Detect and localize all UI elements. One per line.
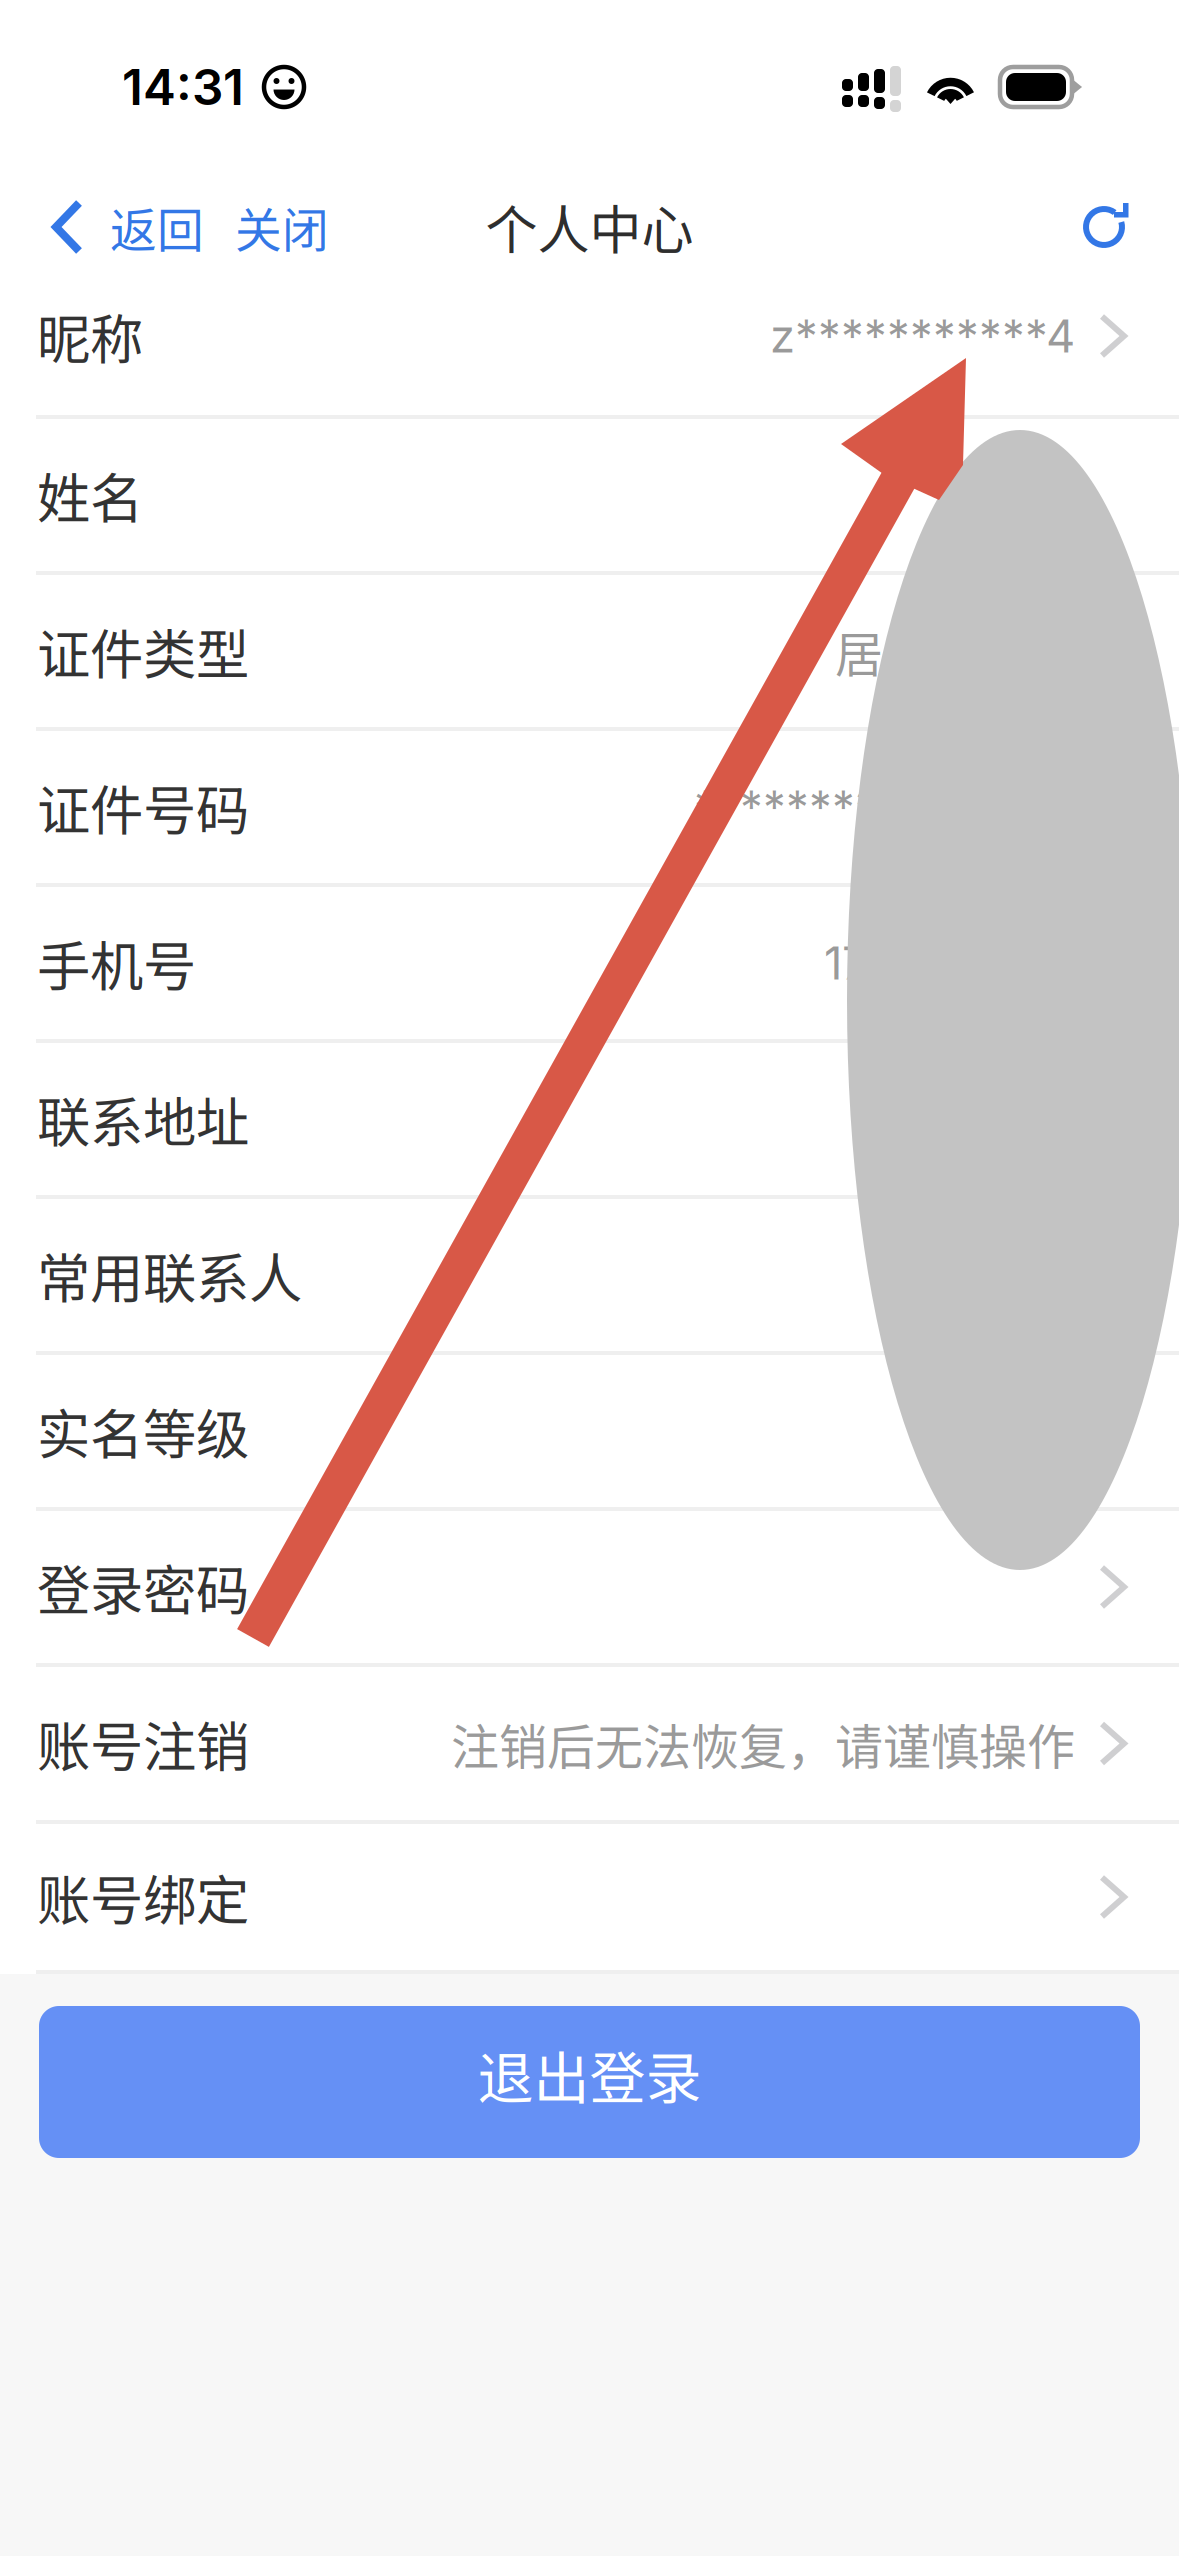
staticText: 14:31 xyxy=(122,57,244,117)
staticText: 退出登录 xyxy=(477,2033,701,2115)
staticText: 姓名 xyxy=(37,456,143,534)
button[interactable]: 实名等级 xyxy=(0,1355,1179,1511)
button[interactable]: 姓名 xyxy=(0,419,1179,575)
staticText: 账号绑定 xyxy=(37,1858,249,1936)
button[interactable]: 证件号码 xyxy=(0,731,1179,887)
staticText: 注销后无法恢复，请谨慎操作 xyxy=(451,1709,1075,1778)
button[interactable]: 证件类型 xyxy=(0,575,1179,731)
staticText: 登录密码 xyxy=(37,1548,249,1626)
button[interactable]: 登录密码 xyxy=(0,1511,1179,1667)
button[interactable]: 关闭 xyxy=(204,191,349,263)
staticText: 个人中心 xyxy=(485,189,693,264)
staticText: *************987 xyxy=(694,780,1075,834)
staticText: 证件类型 xyxy=(37,612,249,690)
button[interactable]: 账号绑定 xyxy=(0,1824,1179,1974)
staticText: 手机号 xyxy=(37,924,196,1002)
staticText: 昵称 xyxy=(37,297,143,375)
button[interactable]: 昵称 xyxy=(0,257,1179,419)
button[interactable]: 手机号 xyxy=(0,887,1179,1043)
button[interactable]: 常用联系人 xyxy=(0,1199,1179,1355)
button[interactable]: Refresh xyxy=(1063,191,1153,263)
staticText: z***********4 xyxy=(770,309,1075,363)
button[interactable]: 联系地址 xyxy=(0,1043,1179,1199)
staticText: 实名等级 xyxy=(37,1392,249,1470)
staticText: 证件号码 xyxy=(37,768,249,846)
staticText: 返回 xyxy=(110,193,204,261)
staticText: 居民身份证 xyxy=(835,616,1075,686)
staticText: 17*******21 xyxy=(824,936,1075,990)
staticText: 关闭 xyxy=(235,193,329,261)
button[interactable]: 账号注销 xyxy=(0,1667,1179,1824)
staticText: 常用联系人 xyxy=(37,1236,302,1314)
staticText: 联系地址 xyxy=(37,1080,249,1158)
button[interactable]: 退出登录 xyxy=(39,2006,1140,2158)
button[interactable]: 返回 xyxy=(0,191,204,263)
staticText: 账号注销 xyxy=(37,1705,249,1782)
